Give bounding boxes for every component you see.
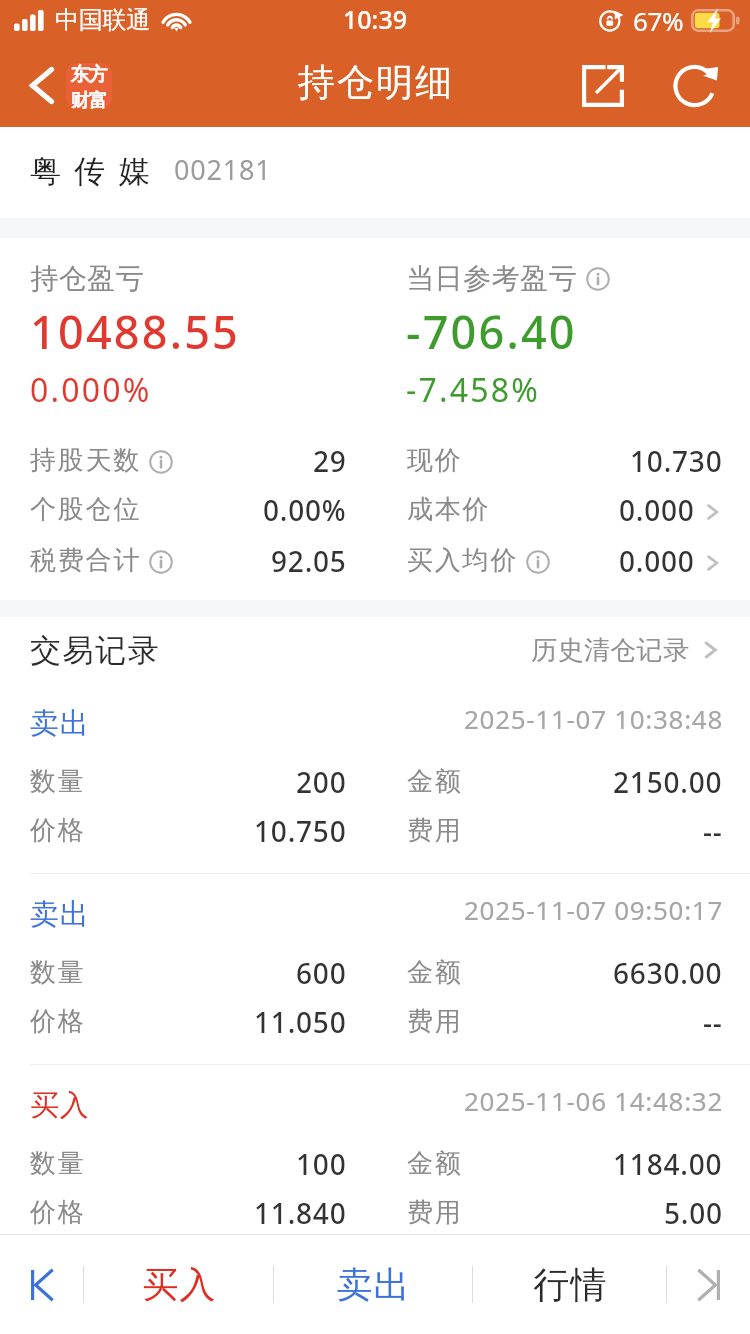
staticText: 历史清仓记录 xyxy=(531,634,690,667)
staticText: 2025-11-06 14:48:32 xyxy=(464,1083,723,1118)
staticText: 5.00 xyxy=(664,1194,723,1232)
staticText: 600 xyxy=(296,954,347,992)
staticText: 卖出 xyxy=(30,705,90,742)
other: Back xyxy=(9,44,74,127)
staticText: 2025-11-07 09:50:17 xyxy=(464,892,723,927)
staticText: 现价 xyxy=(407,444,463,477)
button[interactable]: 行情 xyxy=(473,1235,666,1334)
staticText: 费用 xyxy=(407,1196,463,1229)
staticText: 10.730 xyxy=(630,442,723,480)
button[interactable]: 买入均价 xyxy=(407,544,723,593)
staticText: 价格 xyxy=(30,1196,86,1229)
button[interactable]: Back xyxy=(9,44,120,127)
staticText: 11.840 xyxy=(254,1194,347,1232)
button[interactable]: 历史清仓记录 xyxy=(531,617,722,683)
staticText: -- xyxy=(703,812,723,850)
staticText: 东方 xyxy=(71,63,107,87)
staticText: 买入 xyxy=(142,1262,216,1307)
button[interactable]: Next xyxy=(667,1235,750,1334)
button[interactable]: 买入 xyxy=(84,1235,273,1334)
staticText: 成本价 xyxy=(407,493,491,526)
staticText: 数量 xyxy=(30,956,86,989)
staticText: 10:39 xyxy=(343,2,408,36)
staticText: 10.750 xyxy=(254,812,347,850)
staticText: 个股仓位 xyxy=(30,493,142,526)
staticText: 交易记录 xyxy=(30,631,161,670)
staticText: 卖出 xyxy=(30,896,90,933)
staticText: 数量 xyxy=(30,1147,86,1180)
staticText: -- xyxy=(703,1003,723,1041)
staticText: 数量 xyxy=(30,765,86,798)
staticText: 10488.55 xyxy=(30,301,241,362)
button[interactable]: 卖出 xyxy=(274,1235,472,1334)
staticText: 金额 xyxy=(407,956,463,989)
staticText: 费用 xyxy=(407,1005,463,1038)
staticText: 买入均价 xyxy=(407,544,519,577)
button[interactable]: 卖出 xyxy=(0,683,750,873)
staticText: 持仓盈亏 xyxy=(30,261,144,296)
staticText: 0.00% xyxy=(263,491,347,529)
staticText: 002181 xyxy=(174,151,272,188)
button[interactable]: Previous xyxy=(0,1235,83,1334)
staticText: 6630.00 xyxy=(613,954,723,992)
button[interactable]: Share xyxy=(544,44,661,127)
staticText: 中国联通 xyxy=(55,5,150,35)
staticText: 11.050 xyxy=(254,1003,347,1041)
staticText: 0.000% xyxy=(30,368,152,412)
staticText: 金额 xyxy=(407,1147,463,1180)
button[interactable]: 买入 xyxy=(0,1065,750,1234)
staticText: 2025-11-07 10:38:48 xyxy=(464,701,723,736)
staticText: 持仓明细 xyxy=(297,59,453,106)
staticText: 100 xyxy=(296,1145,347,1183)
staticText: 当日参考盈亏 xyxy=(406,261,577,296)
staticText: 卖出 xyxy=(336,1262,410,1307)
staticText: 粤 传 媒 xyxy=(30,149,153,191)
staticText: 67% xyxy=(633,3,684,38)
staticText: 29 xyxy=(313,442,347,480)
button[interactable]: 成本价 xyxy=(407,493,723,542)
staticText: 价格 xyxy=(30,814,86,847)
staticText: -706.40 xyxy=(406,301,577,362)
staticText: 200 xyxy=(296,763,347,801)
staticText: 税费合计 xyxy=(30,544,142,577)
staticText: 金额 xyxy=(407,765,463,798)
staticText: -7.458% xyxy=(406,368,541,412)
staticText: 92.05 xyxy=(271,542,347,580)
staticText: 2150.00 xyxy=(613,763,723,801)
staticText: 行情 xyxy=(533,1262,607,1307)
button[interactable]: 卖出 xyxy=(0,874,750,1064)
staticText: 持股天数 xyxy=(30,444,142,477)
button[interactable]: Refresh xyxy=(661,44,733,127)
staticText: 财富 xyxy=(71,89,107,109)
staticText: 0.000 xyxy=(619,542,695,580)
staticText: 价格 xyxy=(30,1005,86,1038)
staticText: 1184.00 xyxy=(613,1145,723,1183)
staticText: 0.000 xyxy=(619,491,695,529)
staticText: 费用 xyxy=(407,814,463,847)
staticText: 买入 xyxy=(30,1087,90,1124)
